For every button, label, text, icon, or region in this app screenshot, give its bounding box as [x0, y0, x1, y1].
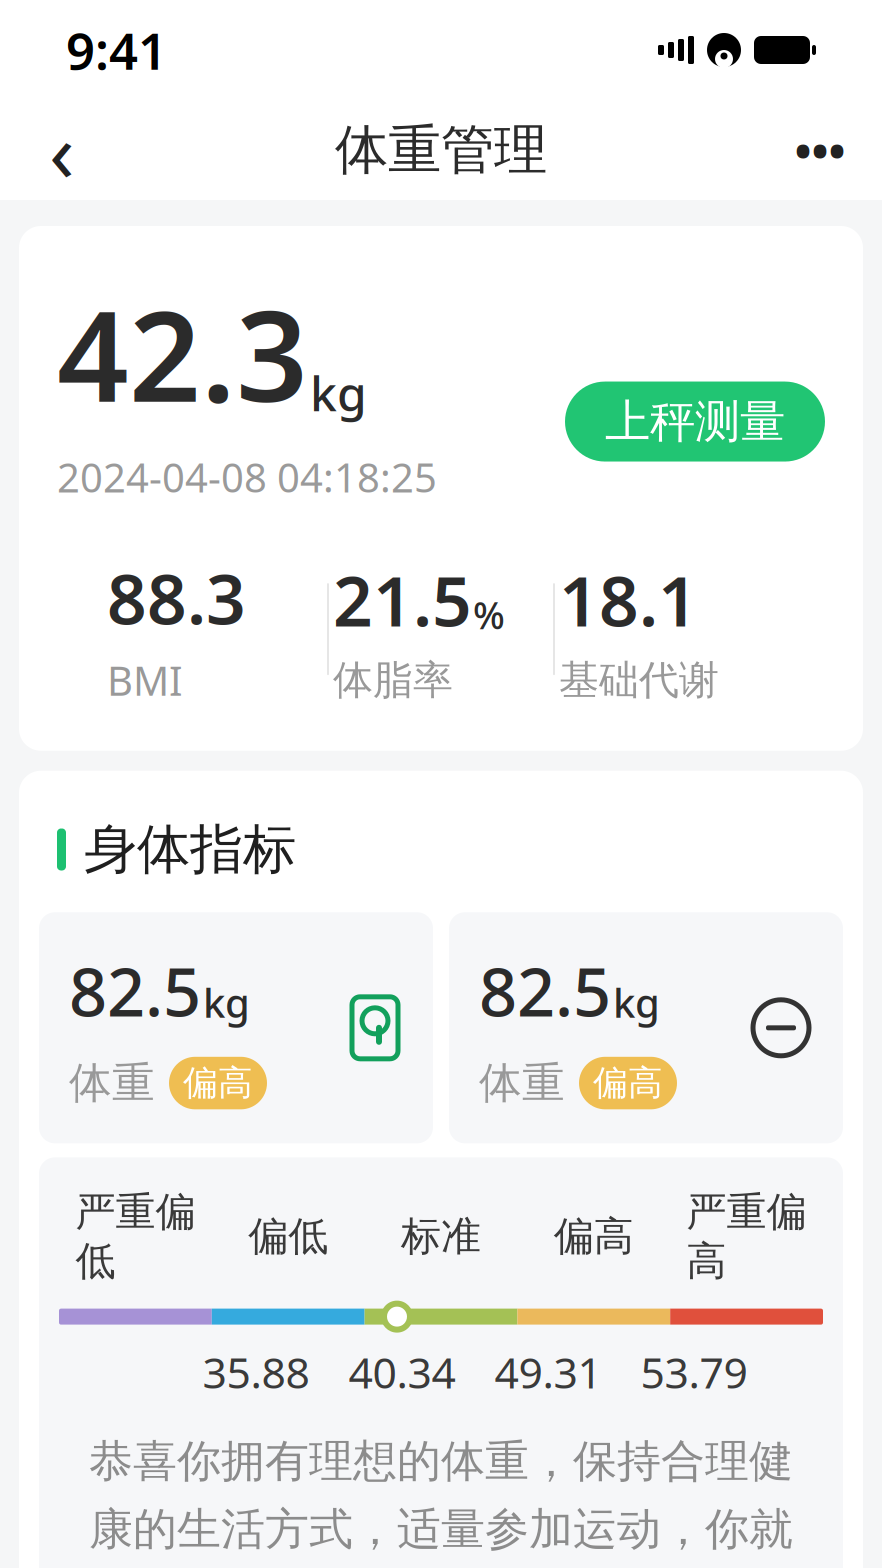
staticText: 42.3 — [57, 270, 308, 436]
staticText: 偏低 — [248, 1212, 328, 1261]
button[interactable]: 82.5 — [449, 912, 843, 1143]
staticText: 35.88 — [202, 1344, 309, 1400]
staticText: 53.79 — [640, 1344, 747, 1400]
button[interactable]: More options — [780, 110, 860, 190]
staticText: 偏高 — [183, 1062, 253, 1104]
staticText: 基础代谢 — [559, 656, 719, 705]
staticText: ‹ — [49, 95, 75, 205]
staticText: 标准 — [401, 1212, 481, 1261]
staticText: 身体指标 — [84, 817, 296, 882]
staticText: 偏高 — [593, 1062, 663, 1104]
staticText: % — [473, 590, 505, 640]
staticText: 体脂率 — [333, 656, 453, 705]
staticText: 82.5 — [479, 946, 611, 1035]
staticText: 体重 — [69, 1057, 155, 1109]
staticText: 恭喜你拥有理想的体重，保持合理健康的生活方式，适量参加运动，你就可以维持标准体重… — [89, 1434, 793, 1568]
staticText: 18.1 — [559, 553, 698, 646]
staticText: 21.5 — [333, 553, 472, 646]
staticText: ••• — [794, 120, 845, 180]
staticText: 9:41 — [66, 16, 167, 84]
staticText: 严重偏低 — [75, 1187, 195, 1286]
staticText: 49.31 — [494, 1344, 601, 1400]
staticText: 上秤测量 — [605, 394, 785, 449]
button[interactable]: 82.5 — [39, 912, 433, 1143]
staticText: BMI — [107, 654, 183, 707]
staticText: 82.5 — [69, 946, 201, 1035]
button[interactable]: 上秤测量 — [565, 382, 825, 462]
button[interactable]: Back — [22, 110, 102, 190]
staticText: 体重管理 — [335, 117, 547, 183]
staticText: 偏高 — [554, 1212, 634, 1261]
staticText: kg — [613, 976, 660, 1029]
staticText: 88.3 — [107, 552, 246, 644]
staticText: 2024-04-08 04:18:25 — [57, 450, 437, 503]
staticText: 体重 — [479, 1057, 565, 1109]
staticText: kg — [310, 361, 367, 424]
staticText: 严重偏高 — [687, 1187, 807, 1286]
staticText: 40.34 — [348, 1344, 455, 1400]
staticText: kg — [203, 976, 250, 1029]
